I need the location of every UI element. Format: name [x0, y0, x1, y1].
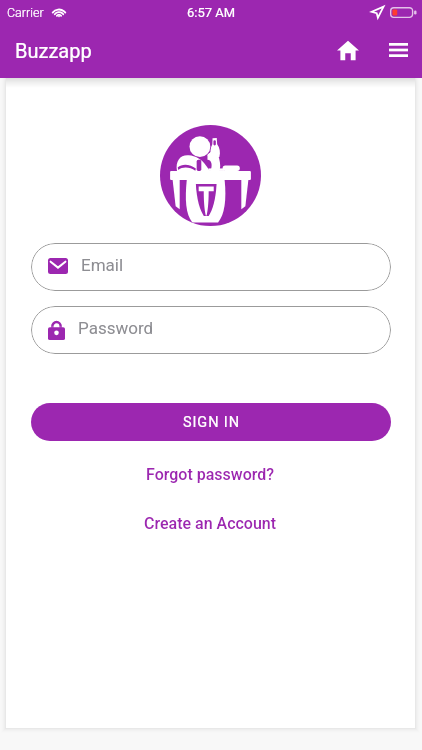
staticText: Forgot password? — [146, 465, 275, 484]
button[interactable]: Create an Account — [134, 510, 287, 537]
button[interactable]: Email — [31, 243, 391, 291]
button[interactable]: Home — [326, 31, 370, 75]
staticText: Create an Account — [144, 514, 277, 533]
staticText: Buzzapp — [15, 39, 92, 62]
staticText: Password — [78, 318, 154, 338]
staticText: 6:57 AM — [187, 5, 236, 20]
staticText: SIGN IN — [183, 414, 240, 431]
button[interactable]: Menu — [376, 31, 420, 75]
button[interactable]: SIGN IN — [31, 403, 391, 441]
staticText: Carrier — [7, 5, 44, 20]
button[interactable]: Forgot password? — [136, 461, 285, 488]
staticText: Email — [81, 255, 124, 275]
button[interactable]: Password — [31, 306, 391, 354]
